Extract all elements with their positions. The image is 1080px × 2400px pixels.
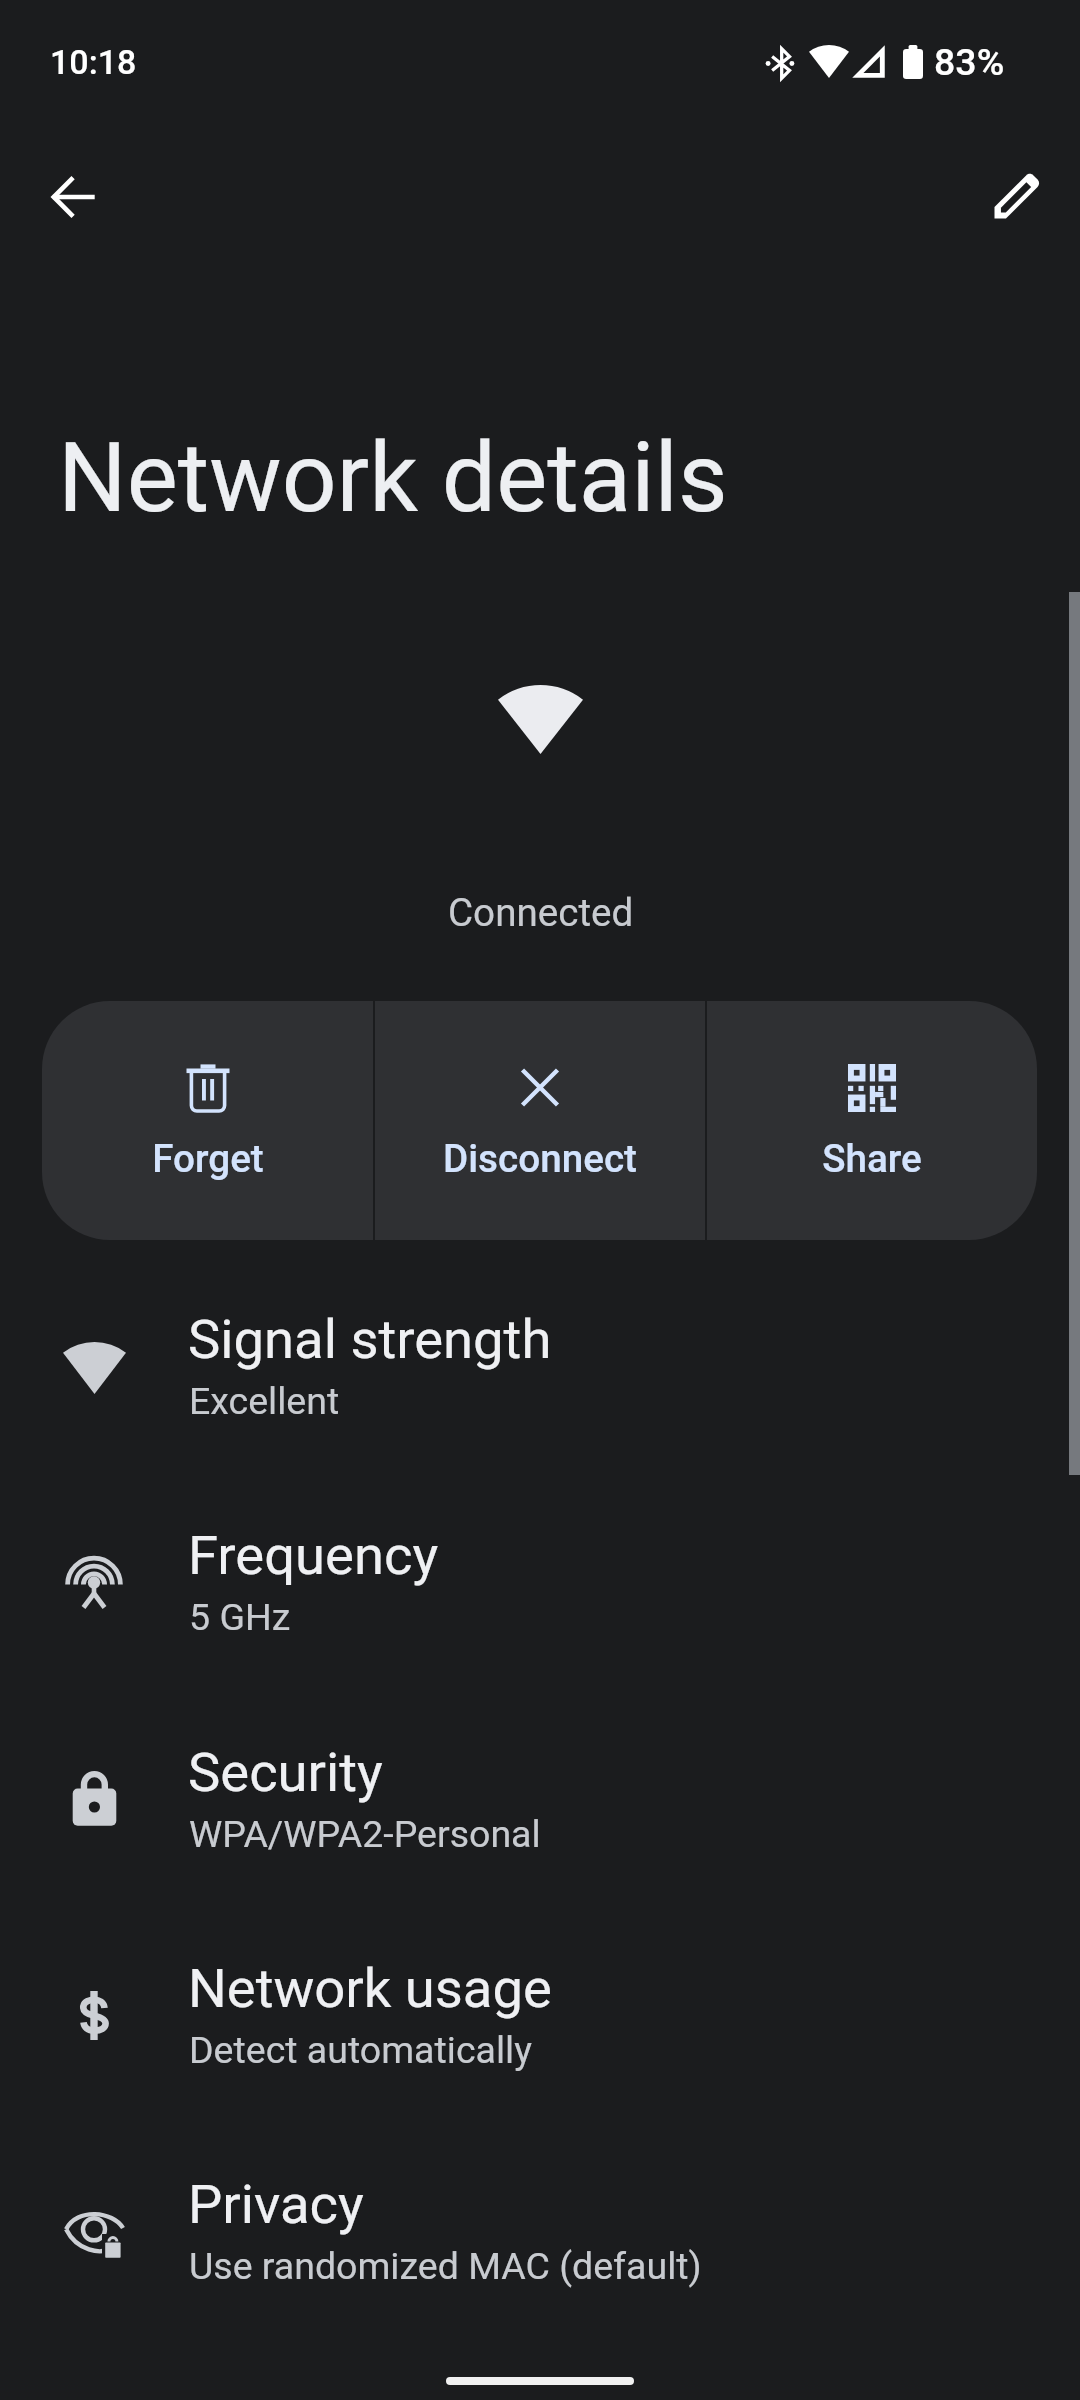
- button[interactable]: Network usage: [0, 1907, 1080, 2123]
- button[interactable]: Forget: [42, 1001, 373, 1240]
- button[interactable]: Privacy: [0, 2123, 1080, 2339]
- button[interactable]: Back: [26, 149, 122, 245]
- staticText: Disconnect: [443, 1136, 637, 1181]
- button[interactable]: Signal strength: [0, 1258, 1080, 1474]
- staticText: Use randomized MAC (default): [189, 2244, 702, 2288]
- staticText: Network usage: [188, 1957, 552, 2021]
- staticText: Connected: [448, 890, 634, 935]
- staticText: Security: [188, 1741, 383, 1805]
- staticText: 83%: [934, 40, 1005, 84]
- staticText: Frequency: [188, 1524, 439, 1588]
- staticText: 5 GHz: [189, 1595, 291, 1639]
- button[interactable]: Edit network: [968, 148, 1064, 244]
- button[interactable]: Share: [707, 1001, 1037, 1240]
- staticText: Network details: [58, 422, 728, 535]
- staticText: WPA/WPA2-Personal: [189, 1812, 541, 1856]
- staticText: Forget: [152, 1136, 264, 1181]
- button[interactable]: Security: [0, 1691, 1080, 1907]
- staticText: Share: [822, 1136, 922, 1181]
- staticText: Detect automatically: [189, 2028, 532, 2072]
- button[interactable]: Disconnect: [375, 1001, 705, 1240]
- staticText: Signal strength: [188, 1308, 552, 1372]
- staticText: 10:18: [50, 42, 137, 82]
- button[interactable]: Frequency: [0, 1474, 1080, 1690]
- staticText: Privacy: [188, 2173, 364, 2237]
- staticText: Excellent: [189, 1379, 340, 1423]
